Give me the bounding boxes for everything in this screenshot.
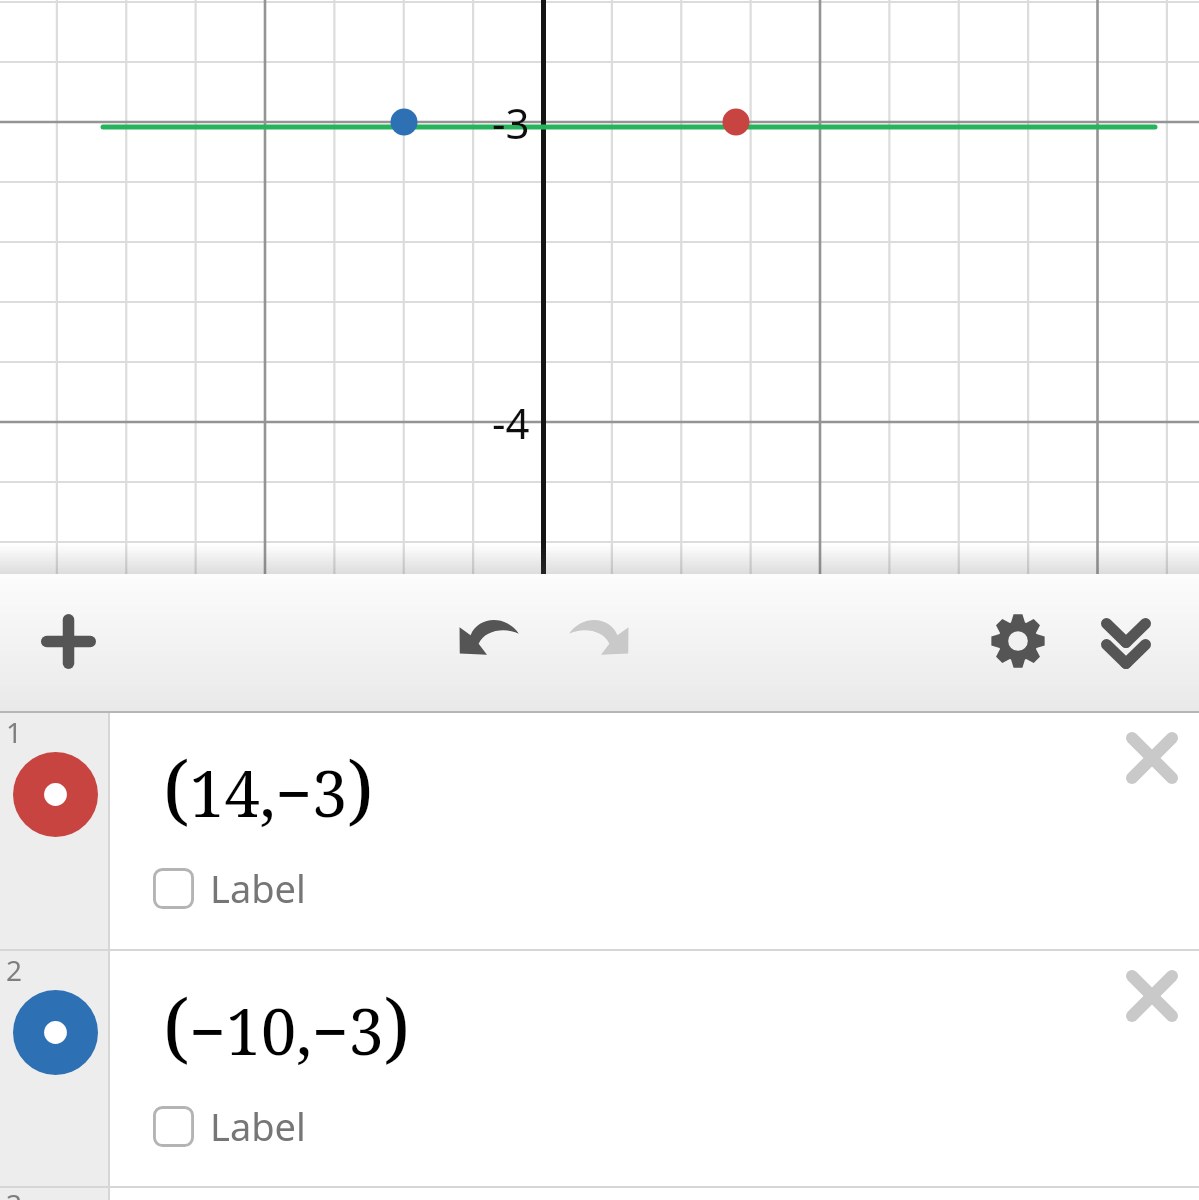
button[interactable]: Undo [445,594,533,682]
button[interactable]: Label [153,1106,305,1148]
button[interactable]: Add expression [24,597,112,685]
staticText: (14,−3) [163,736,374,840]
button[interactable]: Delete expression [1107,951,1197,1041]
staticText: 3 [6,1185,23,1200]
staticText: 2 [6,951,23,989]
staticText: 1 [6,713,23,751]
staticText: (−10,−3) [163,974,410,1078]
button[interactable]: Toggle point visibility [13,990,98,1075]
staticText: Label [210,862,306,904]
button[interactable]: Delete expression [1107,713,1197,803]
staticText: Label [210,1100,306,1142]
button[interactable]: Settings [974,597,1062,685]
button[interactable]: Label [153,868,305,910]
button[interactable]: Toggle point visibility [13,752,98,837]
button[interactable]: Collapse expression list [1082,600,1170,688]
button[interactable]: Redo [555,594,643,682]
staticText: -3 [492,94,530,151]
staticText: -4 [492,394,530,451]
